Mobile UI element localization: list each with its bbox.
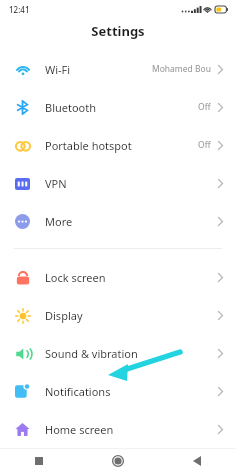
staticText: Settings: [91, 22, 145, 40]
button[interactable]: Bluetooth: [0, 88, 236, 126]
button[interactable]: Recent apps: [0, 449, 78, 472]
staticText: Off: [198, 101, 211, 113]
button[interactable]: Home screen: [0, 410, 236, 448]
staticText: Wi-Fi: [45, 62, 71, 77]
button[interactable]: Portable hotspot: [0, 126, 236, 164]
button[interactable]: Lock screen: [0, 258, 236, 296]
staticText: Portable hotspot: [45, 138, 132, 153]
staticText: Lock screen: [45, 270, 106, 285]
staticText: Mohamed Bou: [152, 63, 211, 75]
button[interactable]: Wi-Fi: [0, 50, 236, 88]
staticText: Notifications: [45, 384, 111, 399]
button[interactable]: Notifications: [0, 372, 236, 410]
staticText: Display: [45, 308, 83, 323]
button[interactable]: More: [0, 202, 236, 240]
staticText: Home screen: [45, 422, 114, 437]
button[interactable]: Sound & vibration: [0, 334, 236, 372]
button[interactable]: Back: [157, 449, 236, 472]
staticText: Off: [198, 139, 211, 151]
button[interactable]: Display: [0, 296, 236, 334]
button[interactable]: VPN: [0, 164, 236, 202]
staticText: Bluetooth: [45, 100, 97, 115]
button[interactable]: Home: [78, 449, 157, 472]
staticText: 12:41: [9, 4, 30, 15]
staticText: Sound & vibration: [45, 346, 138, 361]
staticText: VPN: [45, 176, 67, 191]
staticText: More: [45, 214, 73, 229]
